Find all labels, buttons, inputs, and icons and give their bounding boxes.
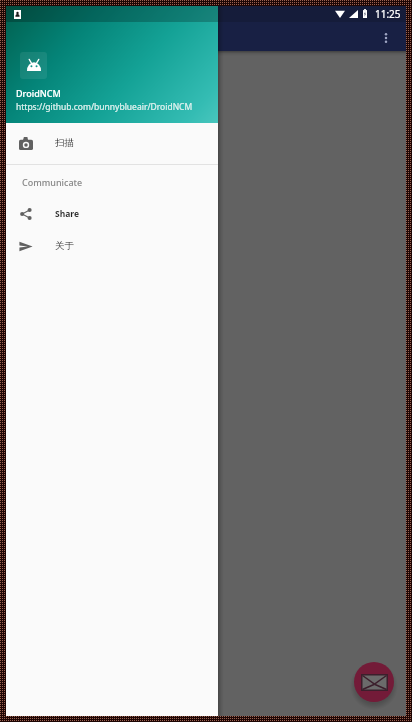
button[interactable]: More options [374,26,398,50]
staticText: Share [55,208,80,220]
staticText: 关于 [55,240,74,252]
staticText: 11:25 [375,7,401,21]
button[interactable]: Compose message [354,662,394,702]
staticText: DroidNCM [16,87,61,99]
staticText: https://github.com/bunnyblueair/DroidNCM [16,101,193,113]
button[interactable]: 关于 [6,230,218,262]
staticText: Communicate [22,176,83,188]
button[interactable]: Share [6,198,218,230]
staticText: 扫描 [55,137,74,149]
button[interactable]: 扫描 [6,127,218,159]
